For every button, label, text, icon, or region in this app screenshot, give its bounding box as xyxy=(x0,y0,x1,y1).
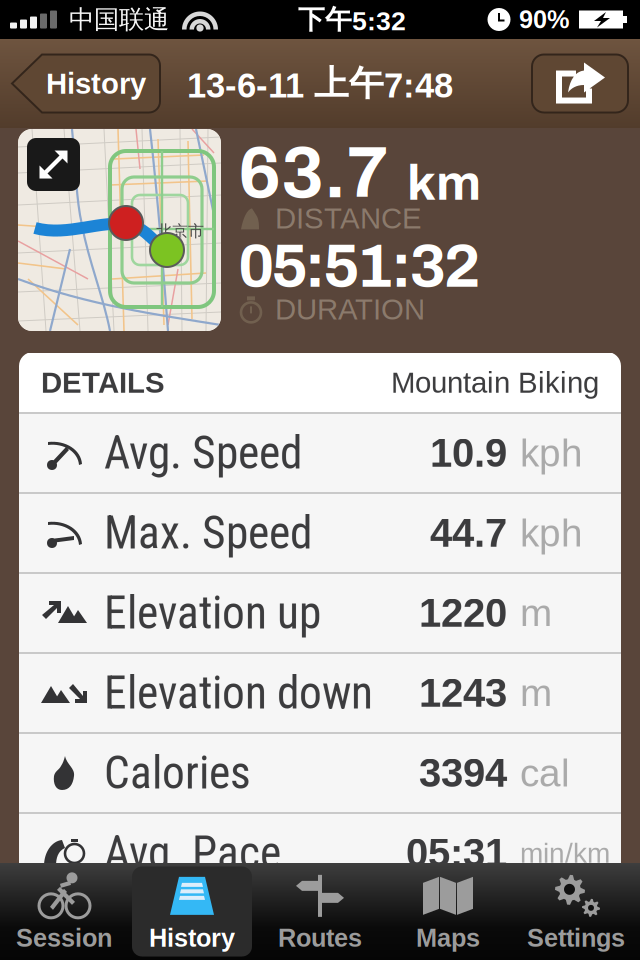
staticText: 90% xyxy=(519,5,570,34)
staticText: 13-6-11 上午7:48 xyxy=(187,62,453,105)
staticText: DURATION xyxy=(275,293,425,326)
staticText: 05:51:32 xyxy=(238,233,481,300)
button[interactable]: Avg. Speed xyxy=(19,414,621,492)
staticText: kph xyxy=(520,511,583,555)
button[interactable]: Maps xyxy=(384,863,512,960)
staticText: 下午5:32 xyxy=(298,3,406,36)
staticText: 10.9 xyxy=(430,431,507,475)
staticText: 1220 xyxy=(419,591,507,635)
staticText: 3394 xyxy=(419,751,507,795)
button[interactable]: Share xyxy=(532,54,628,112)
staticText: m xyxy=(520,591,552,635)
staticText: 中国联通 xyxy=(69,3,169,35)
staticText: History xyxy=(46,67,146,100)
staticText: 05:31 xyxy=(406,831,507,875)
staticText: Routes xyxy=(278,924,362,952)
staticText: m xyxy=(520,671,552,715)
button[interactable]: Max. Pace xyxy=(19,894,621,960)
staticText: cal xyxy=(520,751,570,795)
staticText: km xyxy=(407,155,481,210)
button[interactable]: Elevation up xyxy=(19,574,621,652)
button[interactable]: Avg. Pace xyxy=(19,814,621,892)
staticText: Maps xyxy=(416,924,480,952)
staticText: 02:14 xyxy=(406,911,507,955)
staticText: History xyxy=(149,924,235,952)
button[interactable]: Calories xyxy=(19,734,621,812)
staticText: 44.7 xyxy=(430,511,507,555)
staticText: Calories xyxy=(104,746,251,799)
button[interactable]: Routes xyxy=(256,863,384,960)
staticText: min/km xyxy=(520,917,610,949)
staticText: Max. Speed xyxy=(104,506,312,559)
button[interactable]: Session xyxy=(0,863,128,960)
staticText: min/km xyxy=(520,837,610,869)
staticText: 北京市 xyxy=(156,221,204,241)
staticText: 63.7 xyxy=(238,134,389,212)
staticText: Avg. Pace xyxy=(104,826,281,879)
staticText: kph xyxy=(520,431,583,475)
staticText: DISTANCE xyxy=(275,202,422,235)
staticText: Settings xyxy=(527,924,625,952)
staticText: Mountain Biking xyxy=(391,366,599,399)
button[interactable]: Expand map xyxy=(18,129,221,331)
button[interactable]: History xyxy=(12,54,160,112)
button[interactable]: Max. Speed xyxy=(19,494,621,572)
staticText: DETAILS xyxy=(41,366,165,399)
button[interactable]: Elevation down xyxy=(19,654,621,732)
staticText: Avg. Speed xyxy=(104,426,302,479)
button[interactable]: History xyxy=(128,863,256,960)
staticText: 1243 xyxy=(419,671,507,715)
staticText: Max. Pace xyxy=(104,906,291,959)
staticText: Elevation up xyxy=(104,586,321,639)
staticText: Elevation down xyxy=(104,666,373,719)
staticText: Session xyxy=(16,924,112,952)
button[interactable]: Settings xyxy=(512,863,640,960)
